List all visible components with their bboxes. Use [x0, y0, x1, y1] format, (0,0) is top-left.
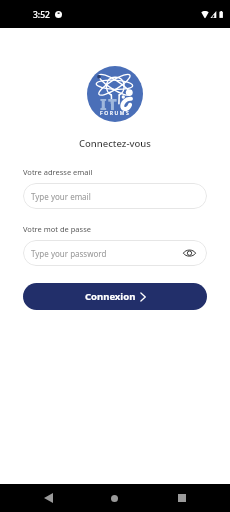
- staticText: Type your password: [31, 248, 107, 259]
- staticText: Votre mot de passe: [23, 224, 91, 234]
- button[interactable]: Home: [104, 484, 125, 512]
- button[interactable]: Connexion: [23, 283, 207, 310]
- staticText: Votre adresse email: [23, 167, 93, 177]
- button[interactable]: Type your password: [23, 240, 207, 266]
- button[interactable]: Type your email: [23, 183, 207, 209]
- staticText: IT: [100, 94, 119, 114]
- button[interactable]: Back: [38, 484, 58, 512]
- staticText: Connectez-vous: [79, 137, 151, 150]
- staticText: Type your email: [31, 191, 91, 202]
- staticText: 3:52: [33, 9, 50, 21]
- button[interactable]: Recent apps: [171, 484, 192, 512]
- staticText: FORUMS: [100, 110, 131, 117]
- staticText: Connexion: [85, 290, 136, 303]
